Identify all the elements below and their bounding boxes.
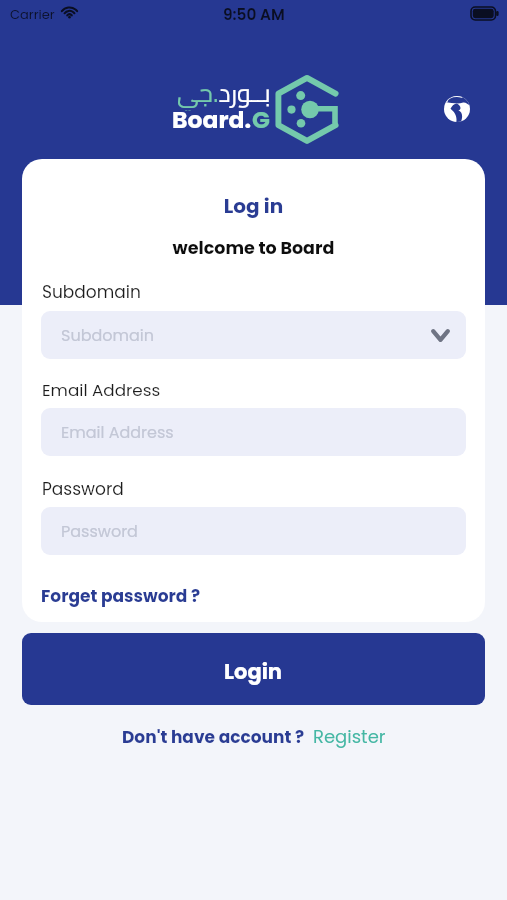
staticText: Login: [224, 657, 283, 686]
button[interactable]: Login: [22, 633, 485, 705]
staticText: welcome to Board: [22, 236, 485, 261]
button[interactable]: Change language: [440, 92, 474, 126]
staticText: Email Address: [42, 378, 161, 402]
button[interactable]: Register: [313, 724, 386, 749]
staticText: Carrier: [10, 5, 55, 23]
staticText: Don't have account ?: [122, 725, 305, 749]
staticText: Forget password ?: [41, 584, 201, 608]
staticText: G: [252, 103, 270, 136]
staticText: بــورد.جي: [177, 69, 271, 111]
staticText: Password: [42, 477, 124, 501]
staticText: Email Address: [61, 421, 174, 443]
staticText: Subdomain: [42, 280, 141, 304]
button[interactable]: Email Address: [41, 408, 466, 456]
button[interactable]: Password: [41, 507, 466, 555]
button[interactable]: Subdomain: [41, 311, 466, 359]
staticText: Board.: [172, 103, 252, 136]
staticText: Register: [313, 724, 386, 749]
staticText: 9:50 AM: [223, 4, 285, 25]
staticText: Password: [61, 520, 138, 542]
button[interactable]: Forget password ?: [41, 584, 201, 608]
staticText: Log in: [22, 192, 485, 220]
staticText: Subdomain: [61, 324, 154, 346]
